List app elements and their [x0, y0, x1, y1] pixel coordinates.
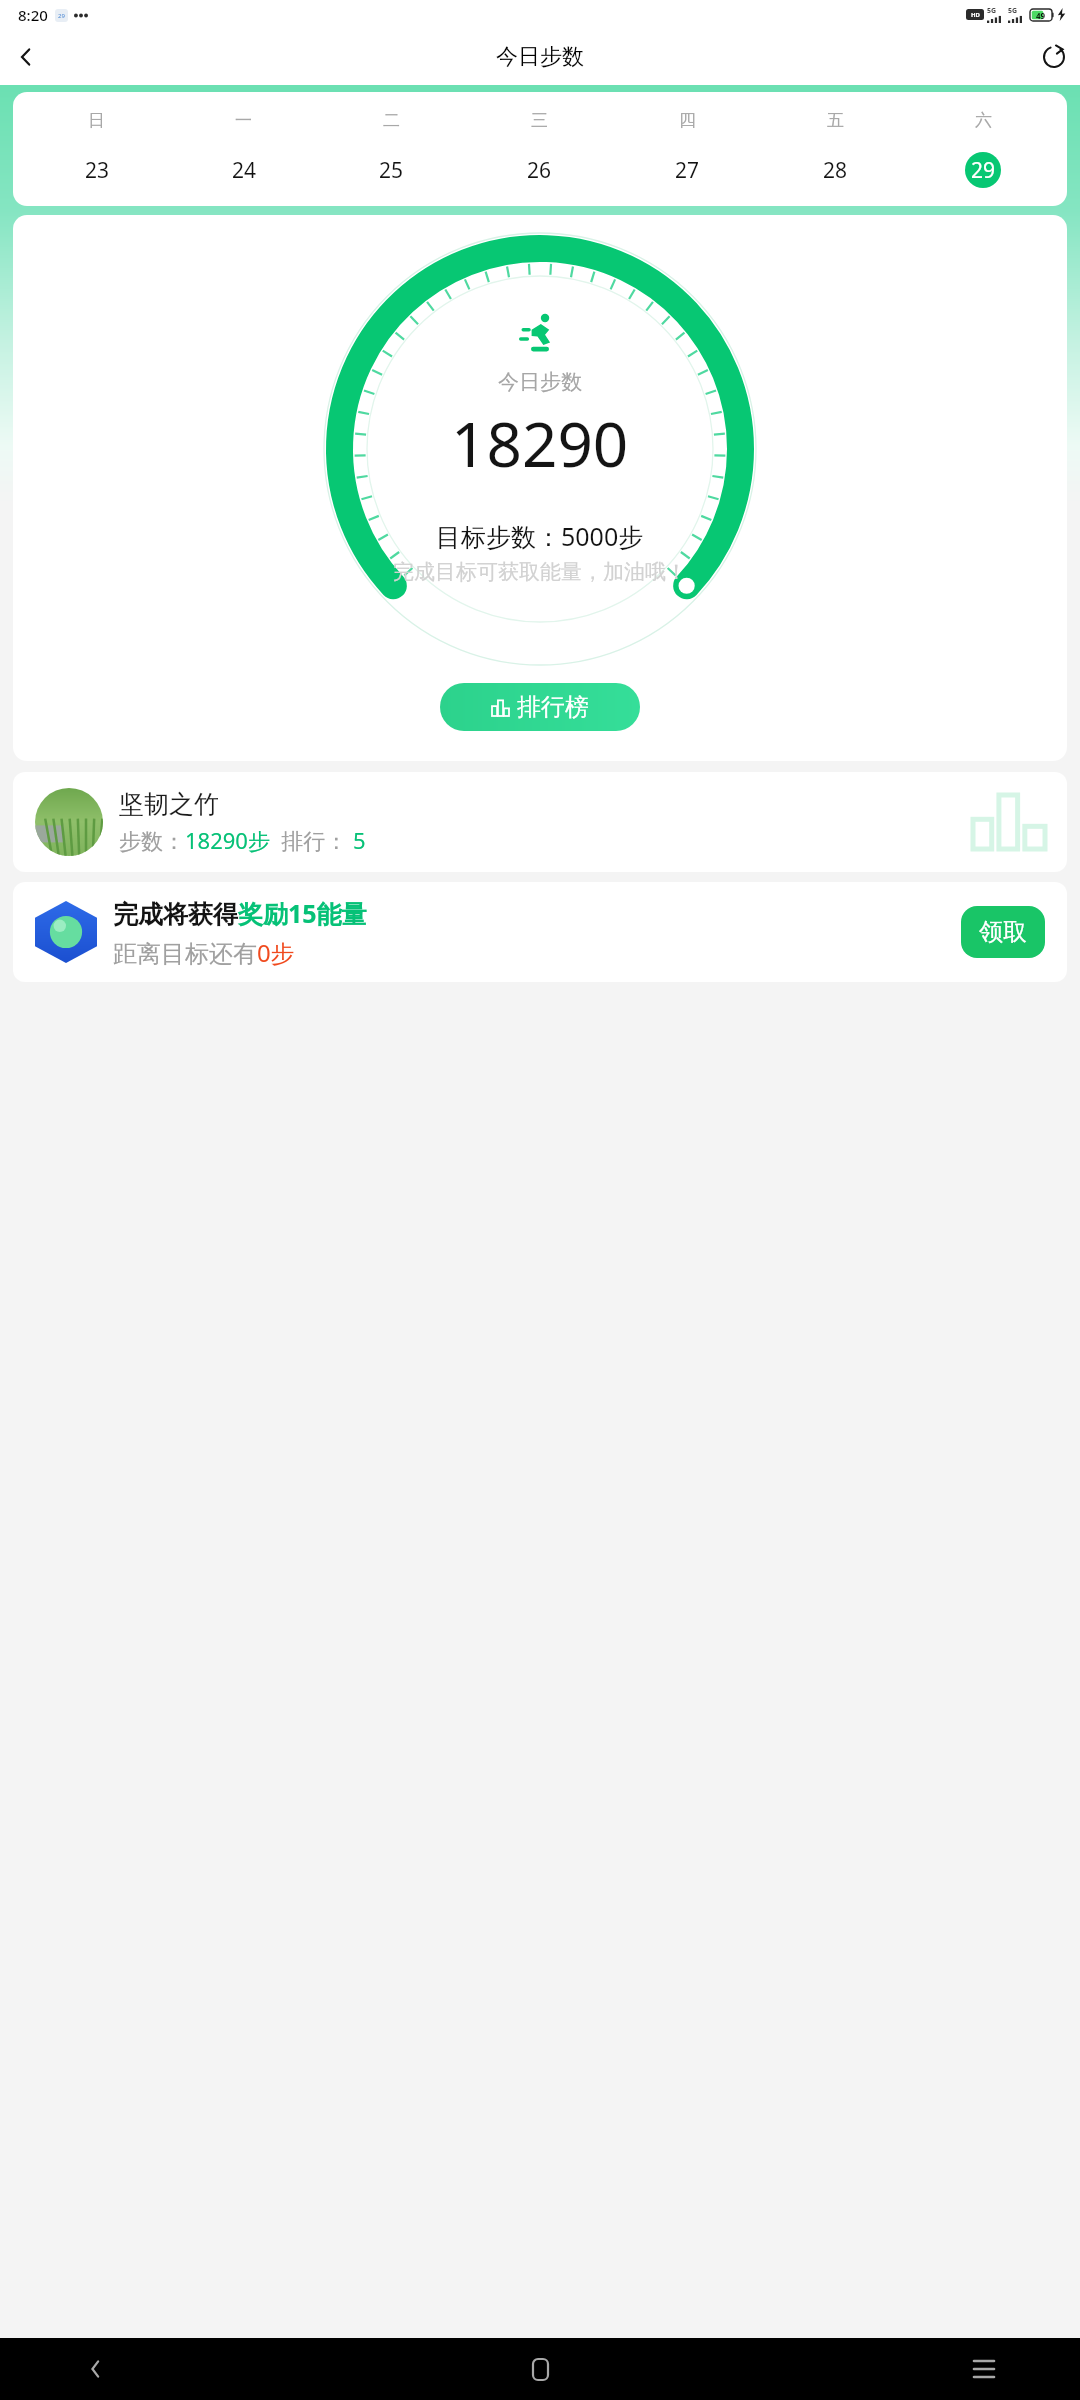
- staticText: 29: [58, 12, 65, 20]
- staticText: 5G: [987, 6, 997, 16]
- staticText: 28: [823, 156, 848, 185]
- staticText: 26: [527, 156, 552, 185]
- staticText: 49: [1036, 10, 1046, 21]
- staticText: 领取: [979, 917, 1027, 947]
- staticText: 目标步数：5000步: [436, 519, 644, 553]
- staticText: 25: [379, 156, 404, 185]
- staticText: 8:20: [18, 5, 48, 25]
- button[interactable]: 完成将获得奖励15能量: [13, 882, 1067, 982]
- staticText: 5G: [1008, 6, 1018, 16]
- staticText: 24: [232, 156, 257, 185]
- staticText: 29: [971, 156, 996, 185]
- staticText: 五: [827, 110, 844, 131]
- button[interactable]: Home: [514, 2343, 566, 2395]
- button[interactable]: Share: [1028, 31, 1080, 83]
- staticText: 六: [975, 110, 992, 131]
- staticText: 今日步数: [498, 369, 582, 395]
- staticText: 完成将获得奖励15能量: [113, 896, 367, 930]
- staticText: 今日步数: [496, 43, 584, 71]
- staticText: HD: [971, 11, 980, 19]
- staticText: 四: [679, 110, 696, 131]
- staticText: 坚韧之竹: [119, 789, 219, 820]
- staticText: 27: [675, 156, 700, 185]
- staticText: 排行榜: [517, 692, 589, 722]
- button[interactable]: 领取: [961, 906, 1045, 958]
- button[interactable]: Back: [0, 31, 52, 83]
- button[interactable]: Back: [70, 2343, 122, 2395]
- button[interactable]: 坚韧之竹: [13, 772, 1067, 872]
- staticText: 三: [531, 110, 548, 131]
- staticText: 距离目标还有0步: [113, 936, 295, 969]
- button[interactable]: Recents: [958, 2343, 1010, 2395]
- staticText: 二: [383, 110, 400, 131]
- staticText: 完成目标可获取能量，加油哦！: [393, 559, 687, 585]
- staticText: 步数：18290步 排行： 5: [119, 825, 366, 855]
- staticText: 18290: [451, 401, 629, 485]
- staticText: 23: [85, 156, 110, 185]
- button[interactable]: 排行榜: [440, 683, 640, 731]
- button[interactable]: 日: [13, 92, 1067, 206]
- staticText: 日: [88, 110, 105, 131]
- staticText: 一: [235, 110, 252, 131]
